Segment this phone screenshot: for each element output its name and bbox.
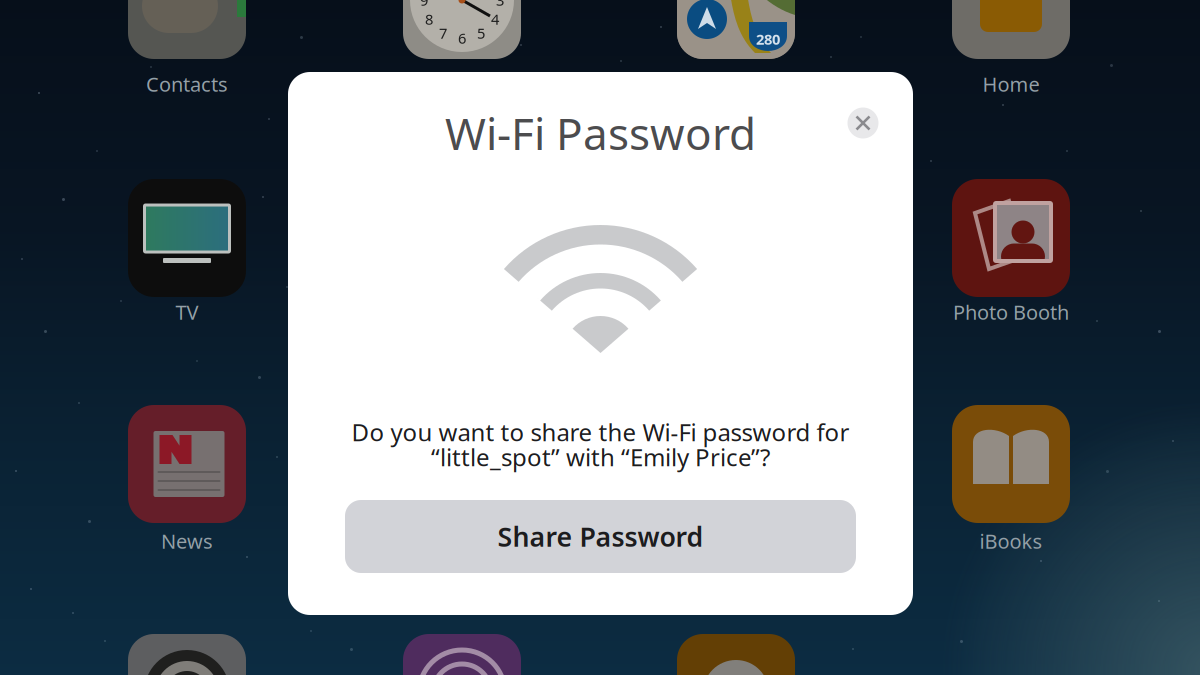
button[interactable]: Share Password (345, 500, 856, 573)
staticText: 5 (477, 23, 485, 43)
staticText: 8 (425, 9, 433, 29)
staticText: 4 (491, 9, 499, 29)
staticText: Photo Booth (953, 299, 1069, 325)
staticText: 3 (496, 0, 504, 10)
staticText: 7 (439, 23, 447, 43)
staticText: 6 (458, 28, 466, 48)
staticText: Share Password (497, 519, 703, 554)
staticText: Do you want to share the Wi-Fi password … (351, 416, 849, 448)
staticText: Home (982, 71, 1039, 97)
staticText: Wi-Fi Password (445, 104, 756, 162)
staticText: 9 (420, 0, 428, 10)
staticText: TV (175, 299, 198, 325)
staticText: 280 (756, 29, 780, 49)
staticText: Contacts (146, 71, 228, 97)
button[interactable]: Close (842, 102, 884, 144)
staticText: “little_spot” with “Emily Price”? (431, 441, 770, 473)
staticText: News (161, 528, 213, 554)
staticText: iBooks (979, 528, 1042, 554)
